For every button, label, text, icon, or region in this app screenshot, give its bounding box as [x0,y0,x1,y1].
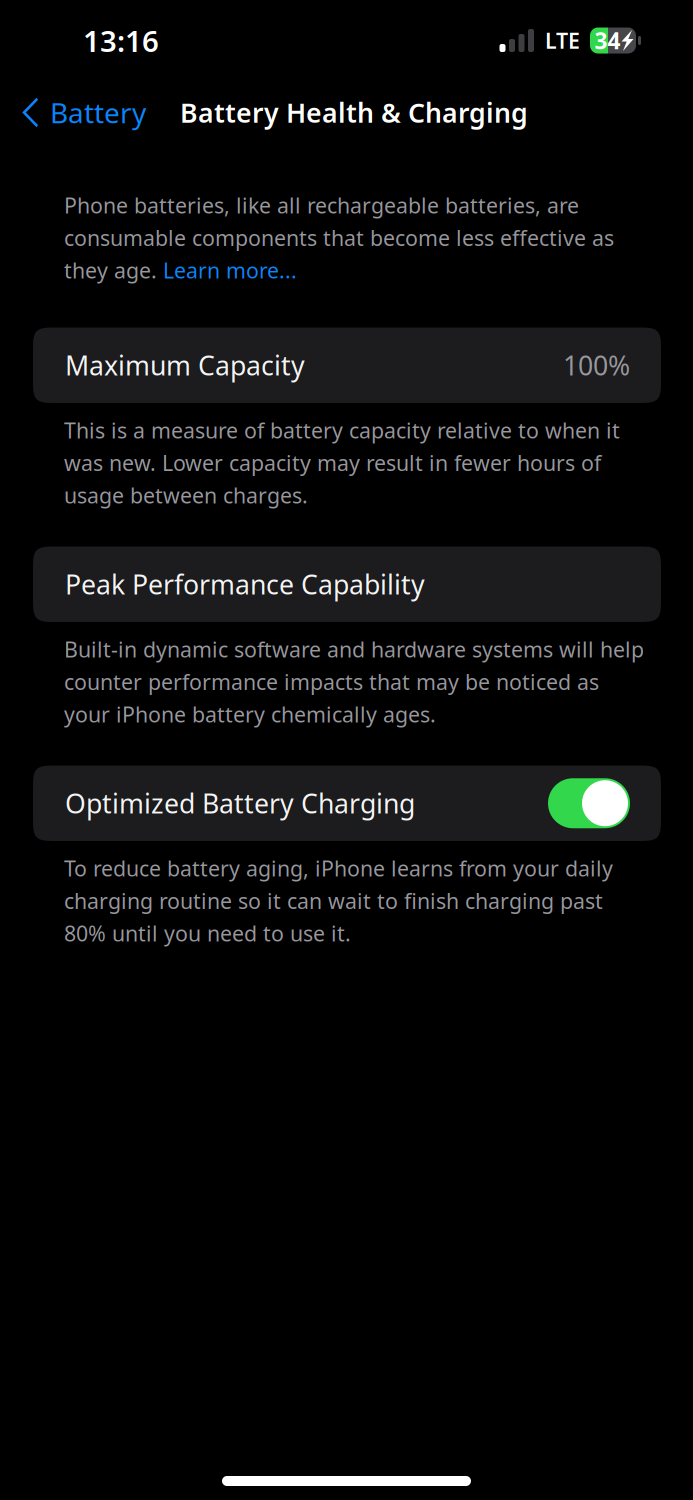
staticText: Battery [50,94,146,131]
staticText: Battery Health & Charging [180,95,528,130]
staticText: usage between charges. [64,481,308,509]
button[interactable]: Learn more... [163,256,297,284]
button[interactable]: Maximum Capacity [33,327,661,403]
staticText: was new. Lower capacity may result in fe… [64,449,601,477]
staticText: Optimized Battery Charging [65,785,415,821]
button[interactable]: Optimized Battery Charging [33,765,661,841]
staticText: counter performance impacts that may be … [64,668,599,696]
staticText: To reduce battery aging, iPhone learns f… [64,854,613,882]
staticText: This is a measure of battery capacity re… [64,416,620,444]
staticText: Maximum Capacity [65,347,305,383]
staticText: 80% until you need to use it. [64,919,351,947]
staticText: Phone batteries, like all rechargeable b… [64,191,579,219]
staticText: LTE [545,26,580,55]
staticText: 13:16 [83,21,159,60]
button[interactable]: Battery [0,83,154,141]
staticText: Peak Performance Capability [65,566,425,602]
staticText: 34 [594,25,620,55]
button[interactable]: Peak Performance Capability [33,546,661,622]
staticText: your iPhone battery chemically ages. [64,700,436,728]
staticText: Learn more... [163,256,297,284]
staticText: consumable components that become less e… [64,224,614,252]
button[interactable]: Optimized Battery Charging, on [548,778,630,828]
staticText: charging routine so it can wait to finis… [64,887,603,915]
staticText: they age. [64,256,163,284]
staticText: 100% [563,347,630,383]
staticText: Built-in dynamic software and hardware s… [64,635,644,663]
